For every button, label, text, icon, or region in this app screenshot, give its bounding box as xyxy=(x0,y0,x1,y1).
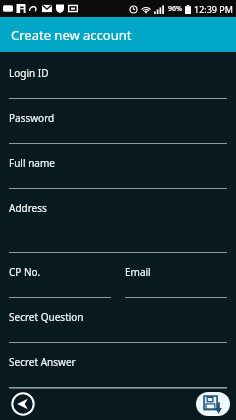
staticText: Password xyxy=(9,111,55,125)
staticText: 96% xyxy=(168,4,182,14)
button[interactable]: Save xyxy=(196,392,230,416)
button[interactable]: Password xyxy=(9,111,227,144)
button[interactable]: Full name xyxy=(9,156,227,189)
button[interactable]: Email xyxy=(125,265,227,298)
button[interactable]: Secret Question xyxy=(9,310,227,343)
button[interactable]: CP No. xyxy=(9,265,111,298)
staticText: Secret Question xyxy=(9,310,84,324)
staticText: CP No. xyxy=(9,265,41,279)
staticText: Address xyxy=(9,201,47,215)
staticText: Email xyxy=(125,265,151,279)
staticText: Create new account xyxy=(11,26,132,44)
staticText: Login ID xyxy=(9,66,49,80)
button[interactable]: Address xyxy=(9,201,227,253)
button[interactable]: Secret Answer xyxy=(9,355,227,388)
staticText: 12:39 PM xyxy=(194,3,233,15)
button[interactable]: Back xyxy=(6,392,40,416)
button[interactable]: Create new account xyxy=(0,17,236,52)
staticText: Full name xyxy=(9,156,55,170)
button[interactable]: Login ID xyxy=(9,66,227,99)
staticText: Secret Answer xyxy=(9,355,76,369)
